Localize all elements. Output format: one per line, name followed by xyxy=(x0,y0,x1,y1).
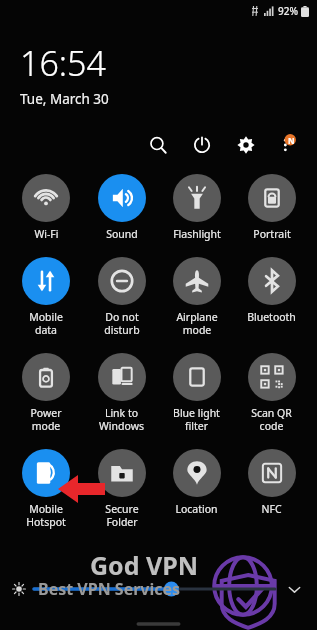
button[interactable]: Bluetooth xyxy=(234,257,309,324)
other: Airplane mode xyxy=(173,257,221,305)
other: Power mode xyxy=(22,353,70,401)
staticText: Secure Folder xyxy=(105,502,139,529)
staticText: Wi-Fi xyxy=(34,227,59,241)
other: Bluetooth xyxy=(248,257,296,305)
staticText: 92% xyxy=(278,4,298,18)
staticText: Tue, March 30 xyxy=(20,90,109,108)
staticText: Bluetooth xyxy=(247,310,296,324)
staticText: Scan QR code xyxy=(251,406,292,433)
staticText: Sound xyxy=(106,227,138,241)
staticText: N xyxy=(288,135,295,146)
staticText: Airplane mode xyxy=(176,310,218,337)
button[interactable]: More options xyxy=(271,128,305,162)
button[interactable]: Wi-Fi xyxy=(8,174,84,241)
button[interactable]: NFC xyxy=(234,449,309,516)
button[interactable]: Location xyxy=(159,449,234,516)
button[interactable]: Power mode xyxy=(8,353,84,433)
other: Portrait xyxy=(248,174,296,222)
button[interactable]: Mobile data xyxy=(8,257,84,337)
other: Link to Windows xyxy=(98,353,146,401)
staticText: Portrait xyxy=(253,227,291,241)
button[interactable]: Settings xyxy=(229,128,263,162)
other: Secure Folder xyxy=(98,449,146,497)
button[interactable]: Blue light filter xyxy=(159,353,234,433)
other: Brightness xyxy=(12,582,26,596)
other: Sound xyxy=(98,174,146,222)
button[interactable]: Secure Folder xyxy=(84,449,159,529)
staticText: Mobile Hotspot xyxy=(26,502,66,529)
staticText: Location xyxy=(175,502,218,516)
staticText: NFC xyxy=(261,502,282,516)
staticText: Best VPN Services xyxy=(38,578,181,600)
other: Flashlight xyxy=(173,174,221,222)
button[interactable]: Scan QR code xyxy=(234,353,309,433)
other: Mobile data xyxy=(22,257,70,305)
button[interactable]: Expand xyxy=(283,578,305,600)
button[interactable]: Link to Windows xyxy=(84,353,159,433)
other: NFC xyxy=(248,449,296,497)
button[interactable]: Do not disturb xyxy=(84,257,159,337)
button[interactable]: Power xyxy=(185,128,219,162)
button[interactable]: Sound xyxy=(84,174,159,241)
staticText: God VPN xyxy=(90,548,199,582)
staticText: Do not disturb xyxy=(104,310,140,337)
staticText: Flashlight xyxy=(173,227,221,241)
other: Location xyxy=(173,449,221,497)
staticText: Mobile data xyxy=(29,310,63,337)
staticText: Blue light filter xyxy=(173,406,220,433)
button[interactable]: Portrait xyxy=(234,174,309,241)
staticText: Power mode xyxy=(30,406,62,433)
button[interactable]: Airplane mode xyxy=(159,257,234,337)
other: Wi-Fi xyxy=(22,174,70,222)
other: Blue light filter xyxy=(173,353,221,401)
other: Do not disturb xyxy=(98,257,146,305)
other: Mobile Hotspot xyxy=(22,449,70,497)
staticText: Link to Windows xyxy=(99,406,144,433)
button[interactable]: Mobile Hotspot xyxy=(8,449,84,529)
staticText: 16:54 xyxy=(20,40,106,86)
other: Scan QR code xyxy=(248,353,296,401)
button[interactable]: Flashlight xyxy=(159,174,234,241)
button[interactable] xyxy=(34,581,275,597)
button[interactable]: Search xyxy=(141,128,175,162)
